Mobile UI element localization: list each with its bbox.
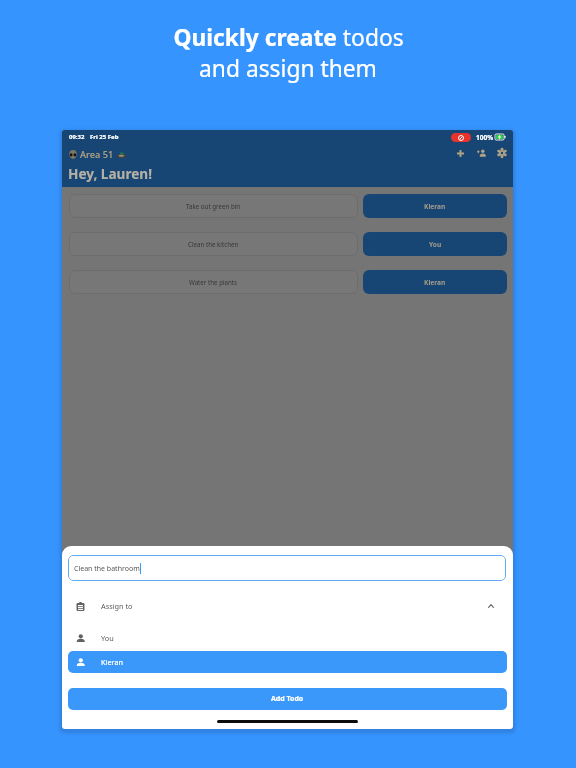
staticText: You xyxy=(101,633,114,643)
staticText: Clean the bathroom xyxy=(74,564,140,574)
button[interactable]: Water the plants xyxy=(69,270,358,294)
staticText: You xyxy=(429,240,442,249)
staticText: Add Todo xyxy=(271,694,304,704)
staticText: and assign them xyxy=(199,53,377,84)
button[interactable]: Assign to xyxy=(68,594,507,618)
button[interactable]: Kieran xyxy=(363,270,507,294)
button[interactable]: Invite member xyxy=(472,144,490,162)
button[interactable]: Add todo xyxy=(451,144,469,162)
button[interactable]: Kieran xyxy=(68,651,507,673)
button[interactable]: Add Todo xyxy=(68,688,507,710)
button[interactable]: Settings xyxy=(493,144,511,162)
staticText: 100% xyxy=(476,133,494,142)
button[interactable]: Kieran xyxy=(363,194,507,218)
staticText: Assign to xyxy=(101,601,133,611)
staticText: Kieran xyxy=(101,657,123,667)
staticText: Hey, Lauren! xyxy=(68,164,153,183)
button[interactable]: You xyxy=(68,627,507,649)
staticText: 09:32 xyxy=(69,133,85,141)
staticText: Kieran xyxy=(424,278,446,287)
staticText: Quickly create todos xyxy=(173,22,404,53)
button[interactable]: You xyxy=(363,232,507,256)
staticText: Kieran xyxy=(424,202,446,211)
button[interactable]: Clean the bathroom xyxy=(68,555,506,581)
button[interactable]: Clean the kitchen xyxy=(69,232,358,256)
button[interactable]: Take out green bin xyxy=(69,194,358,218)
staticText: Area 51 xyxy=(80,148,114,161)
staticText: Fri 25 Feb xyxy=(90,133,119,141)
staticText: Water the plants xyxy=(189,278,238,286)
staticText: Take out green bin xyxy=(186,202,241,210)
staticText: Clean the kitchen xyxy=(188,240,239,248)
